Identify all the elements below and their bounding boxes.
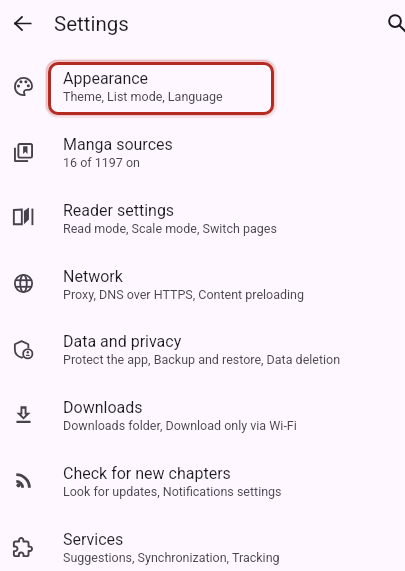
staticText: 16 of 1197 on bbox=[63, 155, 140, 170]
button[interactable]: Check for new chapters bbox=[0, 448, 405, 514]
staticText: Manga sources bbox=[63, 135, 173, 154]
staticText: Look for updates, Notifications settings bbox=[63, 484, 282, 499]
button[interactable]: Appearance bbox=[0, 53, 405, 119]
button[interactable]: Manga sources bbox=[0, 119, 405, 185]
staticText: Read mode, Scale mode, Switch pages bbox=[63, 221, 277, 236]
staticText: Theme, List mode, Language bbox=[63, 89, 223, 104]
staticText: Services bbox=[63, 530, 124, 549]
staticText: Downloads bbox=[63, 398, 143, 417]
button[interactable]: Search bbox=[383, 9, 405, 37]
button[interactable]: Downloads bbox=[0, 382, 405, 448]
button[interactable]: Network bbox=[0, 251, 405, 317]
staticText: Protect the app, Backup and restore, Dat… bbox=[63, 352, 341, 367]
staticText: Suggestions, Synchronization, Tracking bbox=[63, 550, 280, 565]
staticText: Proxy, DNS over HTTPS, Content preloadin… bbox=[63, 287, 304, 302]
staticText: Check for new chapters bbox=[63, 464, 231, 483]
button[interactable]: Back bbox=[8, 9, 36, 37]
staticText: Data and privacy bbox=[63, 332, 182, 351]
staticText: Reader settings bbox=[63, 201, 175, 220]
button[interactable]: Reader settings bbox=[0, 185, 405, 251]
button[interactable]: Data and privacy bbox=[0, 316, 405, 382]
staticText: Downloads folder, Download only via Wi-F… bbox=[63, 418, 297, 433]
staticText: Network bbox=[63, 267, 123, 286]
staticText: Appearance bbox=[63, 69, 149, 88]
staticText: Settings bbox=[54, 12, 129, 36]
button[interactable]: Services bbox=[0, 514, 405, 571]
